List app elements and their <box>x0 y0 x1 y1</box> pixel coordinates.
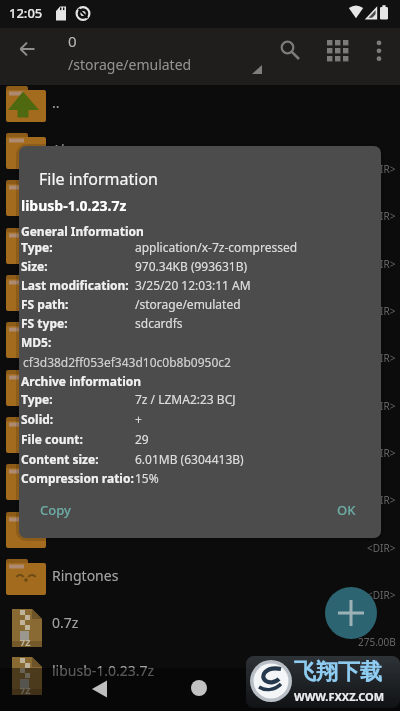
button[interactable]: Movies <box>0 369 400 416</box>
staticText: FS path: <box>21 296 69 312</box>
staticText: <DIR> <box>367 351 396 365</box>
button[interactable] <box>325 587 377 639</box>
staticText: Content size: <box>21 451 99 467</box>
staticText: 275.00B <box>358 635 396 649</box>
staticText: File count: <box>21 431 83 447</box>
staticText: Compression ratio: <box>21 470 134 486</box>
staticText: <DIR> <box>367 209 396 223</box>
staticText: Solid: <box>21 411 54 427</box>
staticText: 6.01MB (6304413B) <box>135 451 244 467</box>
staticText: <DIR> <box>367 541 396 555</box>
staticText: Ringtones <box>52 566 119 585</box>
staticText: Last modification: <box>21 277 129 293</box>
staticText: <DIR> <box>367 493 396 507</box>
button[interactable]: Music <box>0 416 400 463</box>
button[interactable] <box>364 33 396 67</box>
staticText: Android <box>52 187 105 206</box>
staticText: <DIR> <box>367 588 396 602</box>
staticText: /storage/emulated <box>135 296 241 312</box>
button[interactable]: Documents <box>0 274 400 321</box>
staticText: 0 <box>68 31 77 51</box>
button[interactable]: /storage/emulated <box>0 55 270 79</box>
button[interactable] <box>177 668 221 711</box>
staticText: Alarms <box>52 140 98 159</box>
staticText: 飞翔下载 <box>294 658 382 686</box>
staticText: 29 <box>135 431 149 447</box>
staticText: Music <box>52 424 91 443</box>
staticText: 0.7z <box>52 613 79 632</box>
staticText: <DIR> <box>367 399 396 413</box>
staticText: Archive information <box>21 373 142 389</box>
staticText: File information <box>39 168 158 190</box>
button[interactable] <box>276 668 320 711</box>
staticText: 7Z <box>20 684 31 696</box>
button[interactable]: Copy <box>27 491 97 527</box>
staticText: Download <box>52 329 119 348</box>
button[interactable]: Pictures <box>0 511 400 558</box>
button[interactable]: Ringtones <box>0 558 400 605</box>
button[interactable] <box>321 33 355 67</box>
button[interactable]: Alarms <box>0 132 400 179</box>
button[interactable] <box>10 38 44 72</box>
staticText: WWW.FXXZ.COM <box>294 689 385 704</box>
staticText: application/x-7z-compressed <box>135 239 298 255</box>
staticText: libusb-1.0.23.7z <box>21 196 127 215</box>
button[interactable]: 7Z <box>0 653 400 700</box>
staticText: FS type: <box>21 315 68 331</box>
staticText: <DIR> <box>367 304 396 318</box>
button[interactable]: Download <box>0 321 400 368</box>
staticText: Copy <box>40 501 71 519</box>
staticText: 15% <box>135 470 159 486</box>
button[interactable]: .. <box>0 85 400 132</box>
staticText: Type: <box>21 391 53 407</box>
staticText: 7z / LZMA2:23 BCJ <box>135 391 236 407</box>
staticText: Notifications <box>52 471 136 490</box>
button[interactable]: OK <box>315 491 373 527</box>
staticText: 12:05 <box>9 4 43 22</box>
staticText: sdcardfs <box>135 315 183 331</box>
button[interactable]: Notifications <box>0 463 400 510</box>
staticText: MD5: <box>21 334 52 350</box>
staticText: OK <box>337 501 356 519</box>
staticText: <DIR> <box>367 446 396 460</box>
staticText: Size: <box>21 258 48 274</box>
staticText: + <box>135 411 142 427</box>
staticText: cf3d38d2ff053ef343d10c0b8b0950c2 <box>23 354 231 370</box>
staticText: DCIM <box>52 235 89 254</box>
button[interactable]: 7Z <box>0 605 400 652</box>
staticText: <DIR> <box>367 162 396 176</box>
staticText: /storage/emulated <box>68 55 192 74</box>
staticText: Type: <box>21 239 53 255</box>
staticText: Movies <box>52 377 99 396</box>
button[interactable]: Android <box>0 179 400 226</box>
staticText: Documents <box>52 282 128 301</box>
staticText: libusb-1.0.23.7z <box>52 661 155 680</box>
staticText: .. <box>52 93 60 112</box>
staticText: General Information <box>21 223 144 239</box>
button[interactable]: DCIM <box>0 227 400 274</box>
staticText: 3/25/20 12:03:11 AM <box>135 277 251 293</box>
staticText: 970.34KB (993631B) <box>135 258 248 274</box>
staticText: 7Z <box>20 636 31 648</box>
button[interactable] <box>273 33 307 67</box>
button[interactable] <box>78 668 122 711</box>
staticText: <DIR> <box>367 257 396 271</box>
